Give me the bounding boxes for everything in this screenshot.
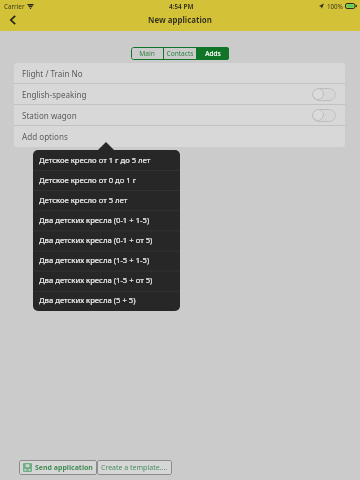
staticText: Flight / Train No bbox=[22, 68, 83, 79]
staticText: Детское кресло от 0 до 1 г bbox=[39, 175, 137, 185]
button[interactable]: Toggle bbox=[312, 109, 336, 122]
staticText: Create a template.... bbox=[101, 463, 168, 473]
staticText: Детское кресло от 5 лет bbox=[39, 195, 128, 205]
button[interactable]: Station wagon bbox=[14, 105, 345, 125]
staticText: Send application bbox=[35, 463, 93, 473]
staticText: Adds bbox=[205, 49, 221, 58]
staticText: Add options bbox=[22, 131, 68, 142]
button[interactable]: Adds bbox=[197, 47, 229, 60]
staticText: Два детских кресла (0-1 + 1-5) bbox=[39, 215, 150, 225]
button[interactable]: English-speaking bbox=[14, 84, 345, 104]
button[interactable]: Детское кресло от 0 до 1 г bbox=[33, 170, 180, 190]
staticText: Contacts bbox=[166, 49, 194, 58]
button[interactable]: Детское кресло от 1 г до 5 лет bbox=[33, 150, 180, 170]
button[interactable]: Два детских кресла (1-5 + 1-5) bbox=[33, 250, 180, 270]
button[interactable]: Send application bbox=[19, 460, 97, 475]
button[interactable]: Toggle bbox=[312, 88, 336, 101]
staticText: 4:54 PM bbox=[169, 2, 194, 11]
staticText: Carrier bbox=[4, 2, 25, 10]
staticText: New application bbox=[148, 15, 212, 26]
staticText: English-speaking bbox=[22, 89, 87, 100]
button[interactable]: Add options bbox=[14, 126, 345, 146]
button[interactable]: Детское кресло от 5 лет bbox=[33, 190, 180, 210]
staticText: Два детских кресла (1-5 + от 5) bbox=[39, 275, 153, 285]
staticText: Два детских кресла (0-1 + от 5) bbox=[39, 235, 153, 245]
button[interactable]: Два детских кресла (5 + 5) bbox=[33, 290, 180, 310]
staticText: Два детских кресла (1-5 + 1-5) bbox=[39, 255, 150, 265]
button[interactable]: Два детских кресла (0-1 + 1-5) bbox=[33, 210, 180, 230]
button[interactable]: Flight / Train No bbox=[14, 63, 345, 83]
staticText: Детское кресло от 1 г до 5 лет bbox=[39, 155, 151, 165]
button[interactable]: Main bbox=[131, 47, 163, 60]
staticText: Main bbox=[139, 49, 155, 58]
button[interactable]: Два детских кресла (0-1 + от 5) bbox=[33, 230, 180, 250]
button[interactable]: Back bbox=[2, 9, 24, 31]
button[interactable]: Два детских кресла (1-5 + от 5) bbox=[33, 270, 180, 290]
staticText: Station wagon bbox=[22, 110, 77, 121]
staticText: Два детских кресла (5 + 5) bbox=[39, 295, 136, 305]
staticText: 100% bbox=[327, 2, 343, 10]
button[interactable]: Contacts bbox=[164, 47, 196, 60]
button[interactable]: Create a template.... bbox=[97, 460, 172, 475]
